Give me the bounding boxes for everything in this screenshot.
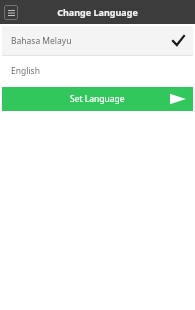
button[interactable]: English <box>2 56 193 85</box>
button[interactable]: Bahasa Melayu <box>2 26 193 55</box>
staticText: Change Language <box>57 6 138 18</box>
staticText: Bahasa Melayu <box>11 35 72 47</box>
button[interactable]: Set Language <box>2 87 193 111</box>
staticText: Set Language <box>70 93 125 105</box>
staticText: English <box>11 65 40 77</box>
button[interactable]: Open navigation menu <box>4 5 18 20</box>
